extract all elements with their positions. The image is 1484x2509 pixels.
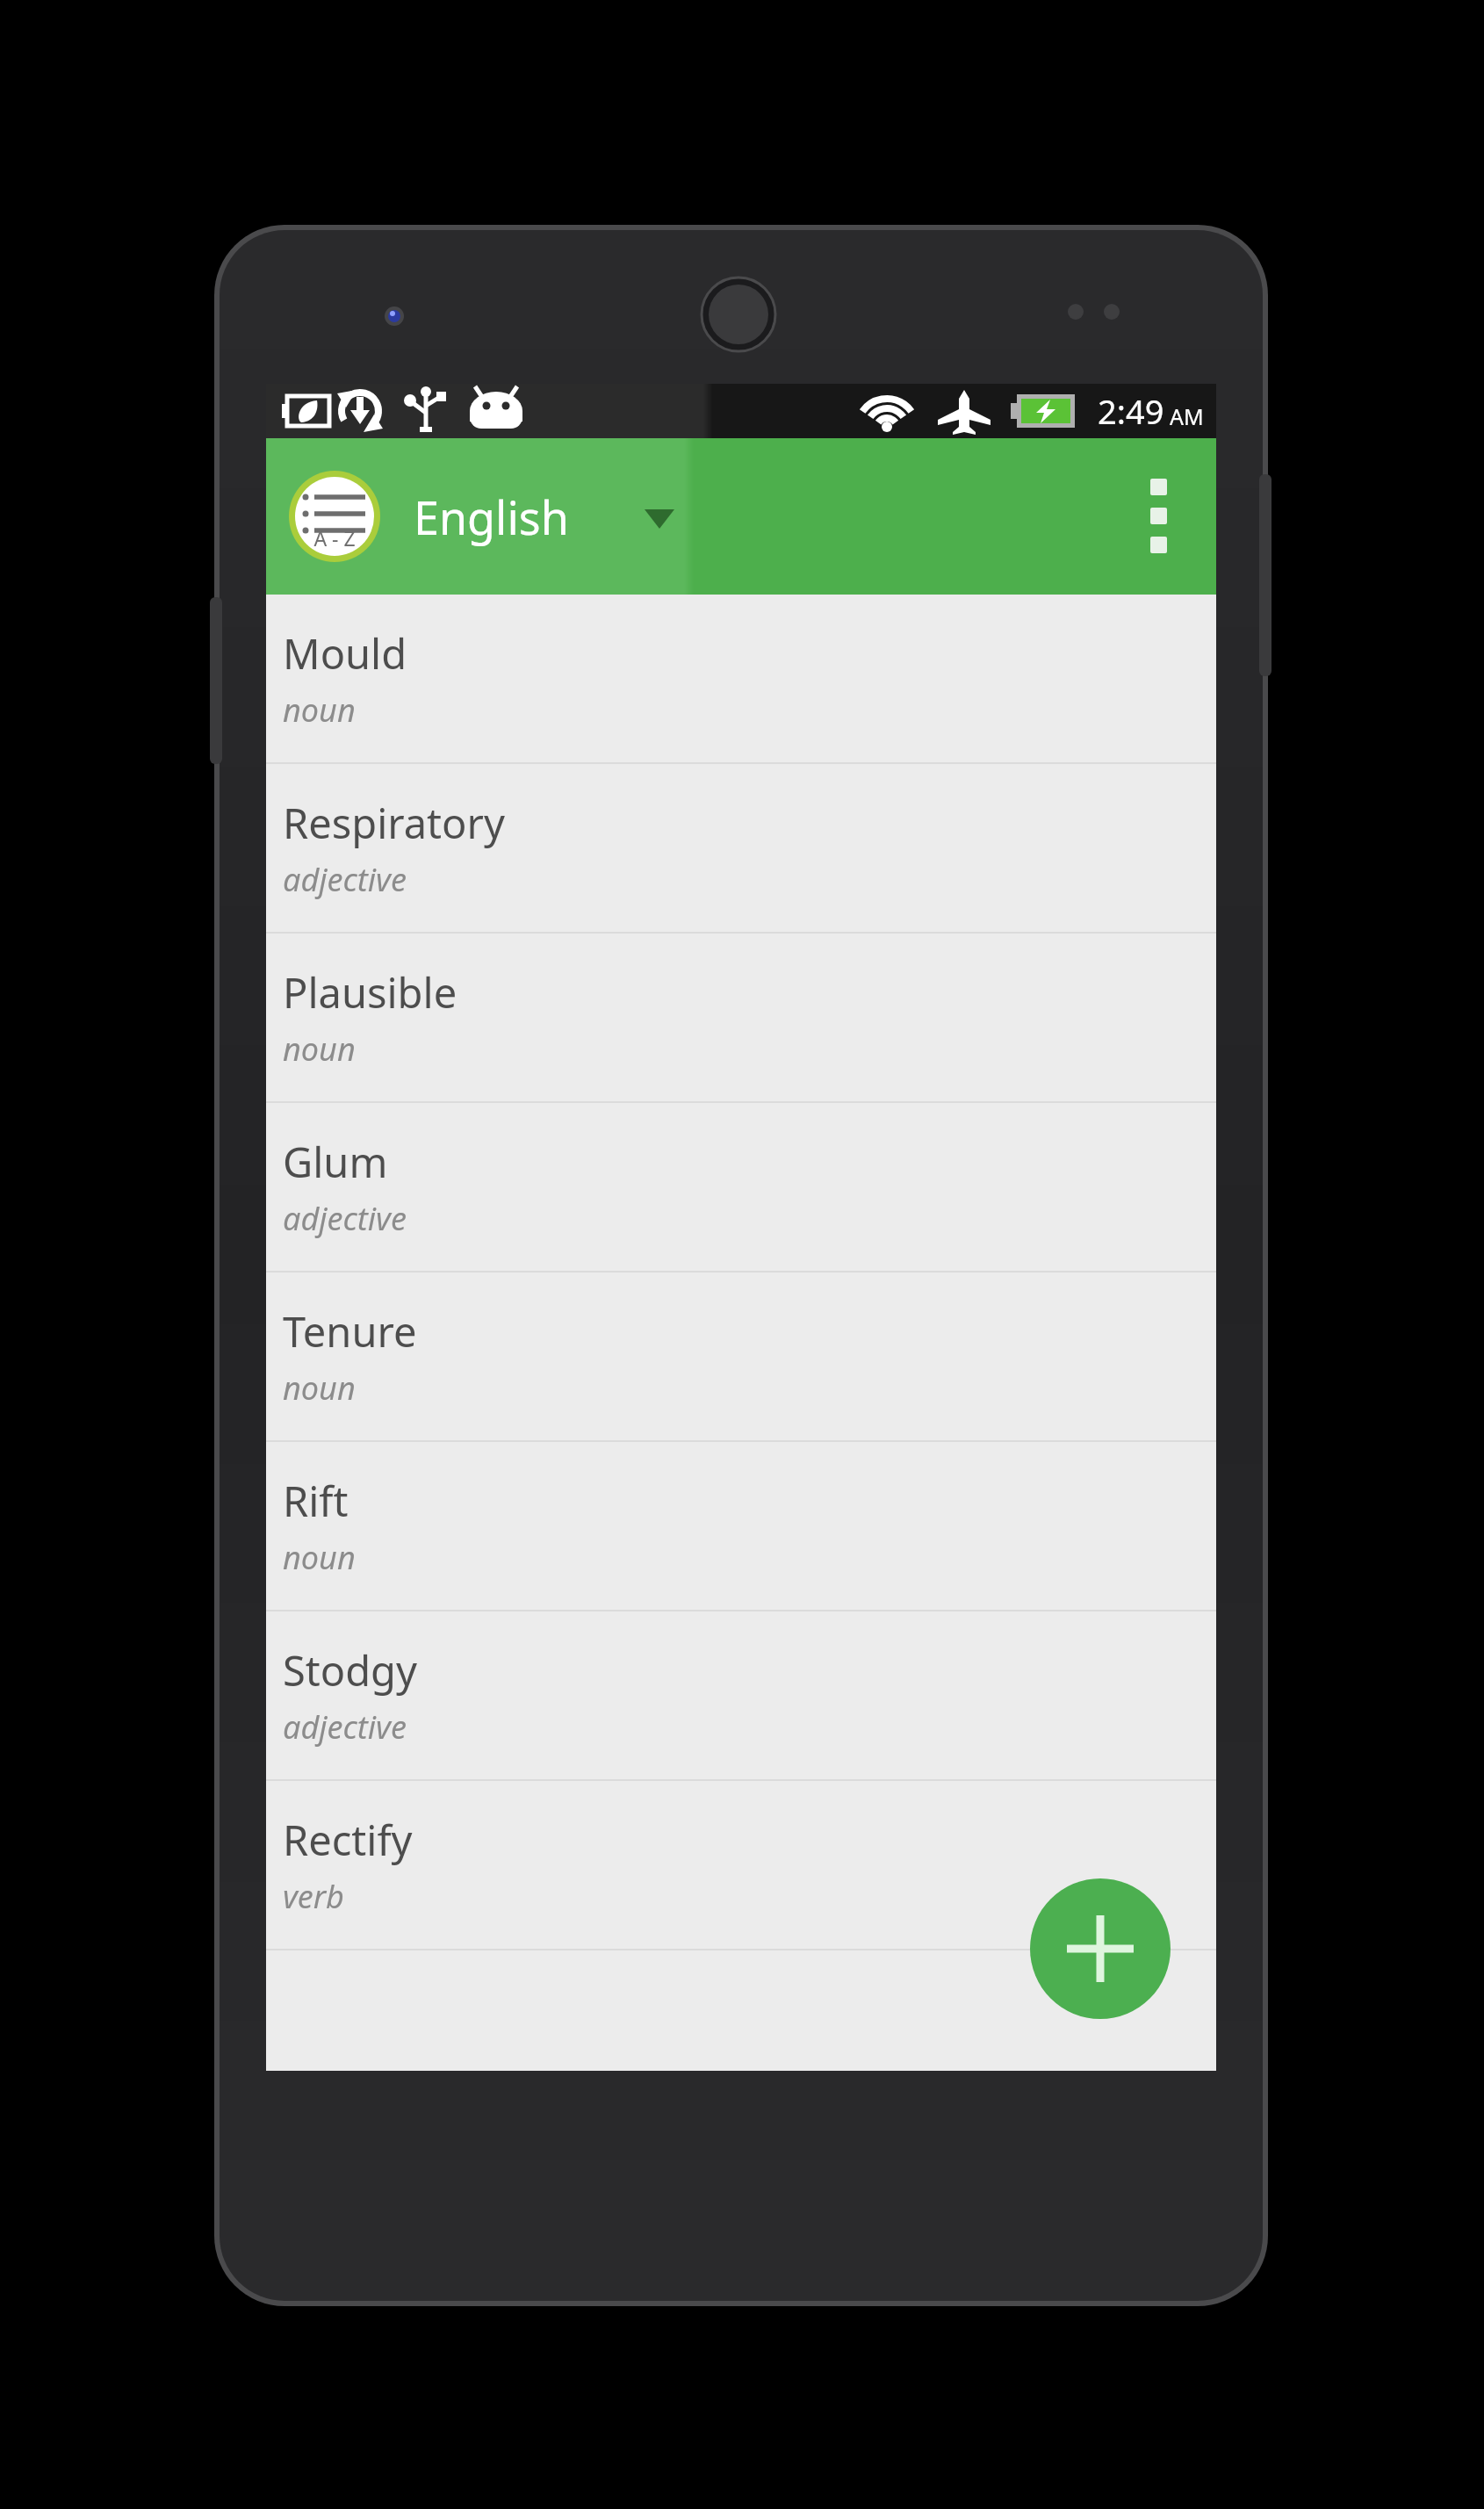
staticText: Tenure (283, 1303, 417, 1359)
button[interactable]: Word list (289, 471, 380, 562)
button[interactable]: Stodgy (266, 1611, 1216, 1779)
staticText: noun (283, 689, 356, 732)
staticText: Mould (283, 625, 407, 681)
button[interactable]: More options (1111, 438, 1207, 595)
staticText: A - Z (313, 524, 356, 552)
staticText: adjective (283, 858, 407, 901)
staticText: Stodgy (283, 1642, 417, 1698)
staticText: noun (283, 1027, 356, 1071)
staticText: Plausible (283, 964, 457, 1020)
button[interactable]: Rift (266, 1442, 1216, 1610)
staticText: noun (283, 1366, 356, 1410)
button[interactable]: Rectify (266, 1781, 1216, 1949)
staticText: adjective (283, 1705, 407, 1748)
staticText: Rift (283, 1473, 349, 1529)
staticText: English (414, 486, 569, 548)
button[interactable]: Add word (1030, 1878, 1171, 2019)
button[interactable]: Mould (266, 595, 1216, 762)
staticText: Respiratory (283, 795, 505, 851)
staticText: AM (1170, 401, 1204, 431)
button[interactable]: Glum (266, 1103, 1216, 1271)
button[interactable]: Tenure (266, 1273, 1216, 1440)
staticText: Glum (283, 1134, 388, 1190)
staticText: adjective (283, 1197, 407, 1240)
staticText: verb (283, 1875, 344, 1918)
staticText: noun (283, 1536, 356, 1579)
button[interactable]: Respiratory (266, 764, 1216, 932)
staticText: 2:49 (1098, 388, 1164, 434)
button[interactable]: English (414, 438, 1111, 595)
staticText: Rectify (283, 1812, 413, 1868)
button[interactable]: Plausible (266, 934, 1216, 1101)
